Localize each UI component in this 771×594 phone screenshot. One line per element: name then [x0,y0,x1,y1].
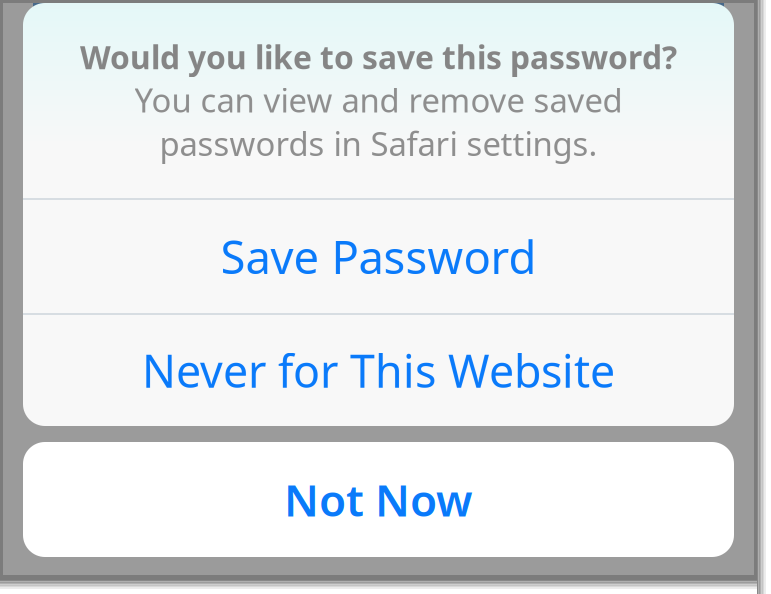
staticText: Save Password [220,226,536,287]
staticText: Never for This Website [142,341,615,400]
staticText: Would you like to save this password? [80,36,677,78]
button[interactable]: Never for This Website [23,315,734,426]
staticText: You can view and remove saved [134,78,622,122]
staticText: passwords in Safari settings. [159,122,597,165]
staticText: Not Now [284,470,473,529]
button[interactable]: Not Now [23,442,734,557]
button[interactable]: Save Password [23,200,734,313]
